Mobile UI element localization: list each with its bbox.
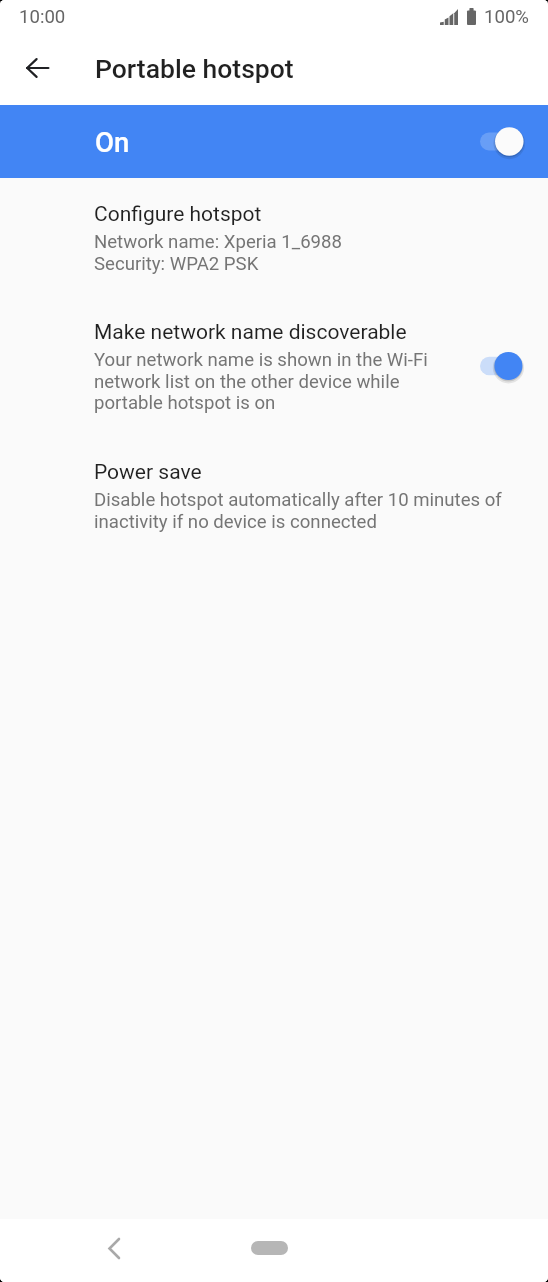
- staticText: Network name: Xperia 1_6988 Security: WP…: [94, 231, 342, 274]
- button[interactable]: Portable hotspot on/off: [480, 124, 533, 159]
- staticText: Portable hotspot: [95, 53, 294, 84]
- staticText: Make network name discoverable: [94, 320, 407, 345]
- staticText: 10:00: [19, 6, 66, 28]
- button[interactable]: Navigate up: [9, 40, 65, 96]
- staticText: Your network name is shown in the Wi-Fi …: [94, 349, 428, 413]
- staticText: 100%: [484, 6, 529, 28]
- button[interactable]: On: [0, 105, 548, 178]
- staticText: Power save: [94, 460, 202, 485]
- button[interactable]: Make network name discoverable: [0, 297, 548, 436]
- button[interactable]: Back: [91, 1226, 135, 1270]
- button[interactable]: Power save: [0, 436, 548, 556]
- staticText: On: [95, 126, 130, 158]
- button[interactable]: Home: [251, 1241, 288, 1255]
- button[interactable]: Configure hotspot: [0, 178, 548, 297]
- button[interactable]: Make network name discoverable toggle: [480, 349, 532, 383]
- staticText: Disable hotspot automatically after 10 m…: [94, 489, 502, 532]
- staticText: Configure hotspot: [94, 202, 262, 227]
